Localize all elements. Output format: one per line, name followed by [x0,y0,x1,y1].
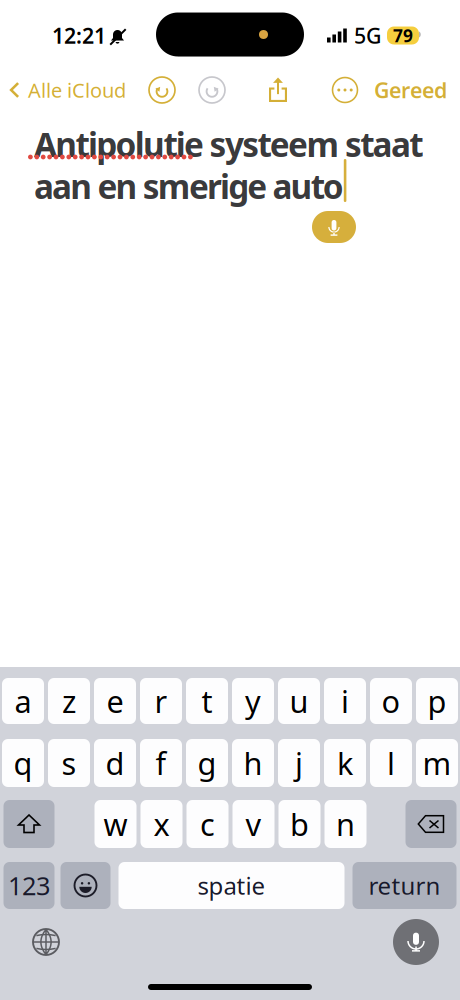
button[interactable]: c [186,800,228,848]
button[interactable]: Redo [190,69,234,111]
button[interactable]: z [48,678,90,724]
button[interactable]: Shift [3,800,54,848]
staticText: aan en smerige auto [34,164,344,208]
staticText: f [155,743,166,783]
staticText: r [154,681,167,721]
button[interactable]: s [48,739,90,787]
button[interactable]: w [94,800,136,848]
staticText: spatie [197,870,265,901]
button[interactable]: f [140,739,182,787]
staticText: m [422,743,451,783]
button[interactable]: y [232,678,274,724]
button[interactable]: q [2,739,44,787]
staticText: e [106,681,123,721]
staticText: o [381,681,400,721]
button[interactable]: Dictate [393,919,439,965]
staticText: h [243,743,262,783]
button[interactable]: i [324,678,366,724]
staticText: d [105,743,124,783]
button[interactable]: l [370,739,412,787]
staticText: l [387,743,395,783]
button[interactable]: j [278,739,320,787]
staticText: a [14,681,31,721]
staticText: z [62,681,76,721]
staticText: y [245,681,261,721]
button[interactable]: More [323,69,367,111]
button[interactable]: h [232,739,274,787]
button[interactable]: b [278,800,320,848]
staticText: 123 [8,869,50,902]
button[interactable]: Emoji [60,862,110,909]
staticText: Antipolutie systeem staat [34,122,423,166]
staticText: v [245,804,261,844]
button[interactable]: k [324,739,366,787]
staticText: t [201,681,212,721]
button[interactable]: r [140,678,182,724]
button[interactable]: Alle iCloud [0,68,132,112]
button[interactable]: 123 [3,862,54,909]
button[interactable]: g [186,739,228,787]
button[interactable]: Gereed [367,67,454,113]
button[interactable]: a [2,678,44,724]
button[interactable]: t [186,678,228,724]
button[interactable]: n [324,800,366,848]
staticText: w [103,804,127,844]
button[interactable]: v [232,800,274,848]
button[interactable]: d [94,739,136,787]
button[interactable]: x [140,800,182,848]
staticText: j [295,743,303,783]
staticText: x [153,804,169,844]
staticText: b [290,804,309,844]
button[interactable]: spatie [118,862,344,909]
staticText: u [289,681,308,721]
button[interactable]: Change keyboard [24,920,68,964]
button[interactable]: u [278,678,320,724]
staticText: c [200,804,215,844]
staticText: Alle iCloud [28,77,126,103]
button[interactable]: p [416,678,458,724]
staticText: return [368,870,440,901]
button[interactable]: m [416,739,458,787]
staticText: i [341,681,349,721]
button[interactable]: o [370,678,412,724]
staticText: Gereed [374,76,447,104]
button[interactable]: e [94,678,136,724]
staticText: q [13,743,32,783]
staticText: k [337,743,353,783]
staticText: 12:21 [52,21,106,50]
button[interactable]: Delete [405,800,456,848]
staticText: 5G [354,21,382,50]
button[interactable]: Share [256,69,300,111]
staticText: n [336,804,355,844]
staticText: s [61,743,76,783]
button[interactable]: return [352,862,456,909]
staticText: p [427,681,446,721]
staticText: 79 [393,24,413,47]
button[interactable]: Undo [140,69,184,111]
staticText: g [197,743,216,783]
